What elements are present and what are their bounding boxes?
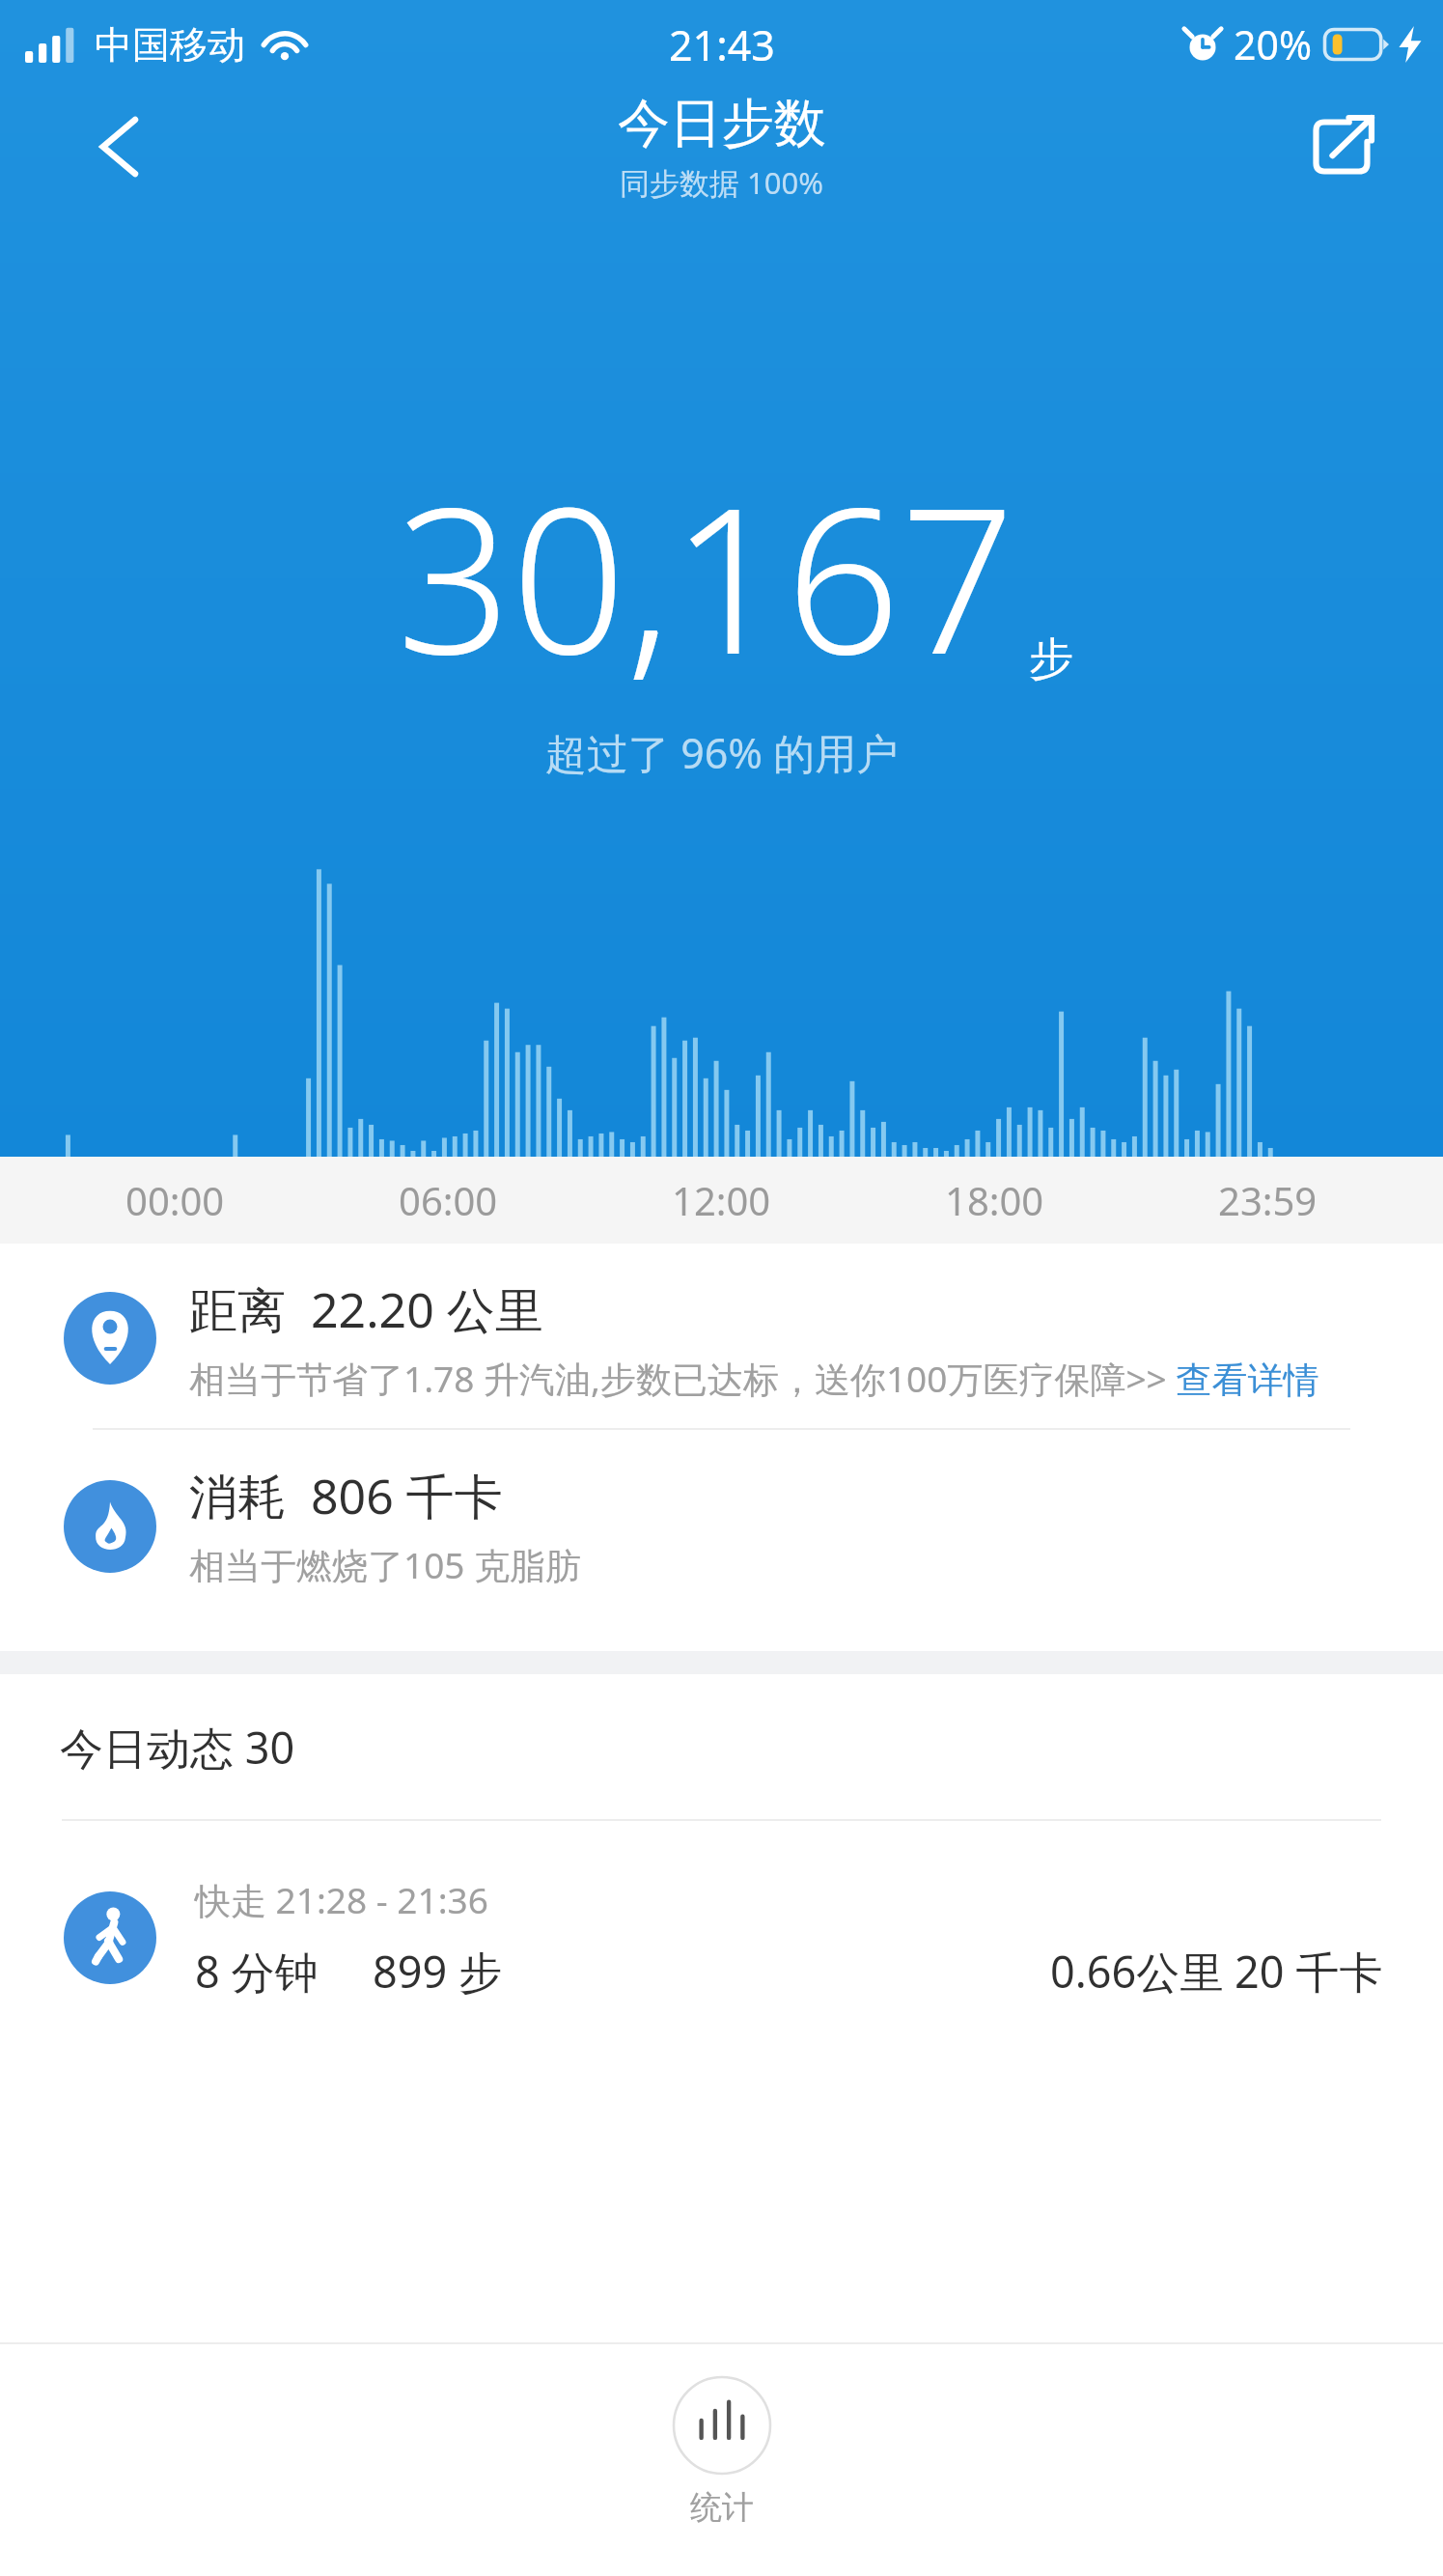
staticText: 相当于燃烧了105 克脂肪 xyxy=(189,1540,582,1589)
staticText: 20% xyxy=(1234,17,1312,71)
staticText: 同步数据 100% xyxy=(620,162,824,203)
staticText: 今日步数 xyxy=(618,91,826,156)
staticText: 18:00 xyxy=(945,1174,1044,1226)
staticText: 快走 21:28 - 21:36 xyxy=(195,1875,488,1924)
staticText: 8 分钟 xyxy=(195,1942,319,2001)
staticText: 21:43 xyxy=(669,16,775,73)
button[interactable]: 距离 22.20 公里 xyxy=(0,1244,1443,1428)
button[interactable]: 快走 21:28 - 21:36 xyxy=(0,1821,1443,2055)
staticText: 统计 xyxy=(690,2487,754,2528)
button[interactable]: 统计 xyxy=(672,2375,772,2528)
staticText: 相当于节省了1.78 升汽油,步数已达标，送你100万医疗保障>> 查看详情 xyxy=(189,1354,1319,1403)
staticText: 中国移动 xyxy=(95,21,245,69)
button[interactable]: Back xyxy=(60,97,160,197)
staticText: 步 xyxy=(1029,631,1073,687)
staticText: 消耗 806 千卡 xyxy=(189,1463,503,1528)
staticText: 超过了 96% 的用户 xyxy=(545,724,899,781)
staticText: 23:59 xyxy=(1218,1174,1318,1226)
staticText: 今日动态 30 xyxy=(60,1718,295,1777)
staticText: 30,167 xyxy=(397,439,1015,713)
button[interactable]: 消耗 806 千卡 xyxy=(0,1430,1443,1628)
button[interactable]: Share xyxy=(1292,98,1389,195)
staticText: 距离 22.20 公里 xyxy=(189,1276,543,1342)
staticText: 0.66公里 20 千卡 xyxy=(1050,1942,1383,2001)
staticText: 06:00 xyxy=(399,1174,498,1226)
staticText: 00:00 xyxy=(125,1174,225,1226)
staticText: 12:00 xyxy=(672,1174,771,1226)
other: 统计 xyxy=(672,2375,772,2476)
staticText: 899 步 xyxy=(373,1942,502,2001)
